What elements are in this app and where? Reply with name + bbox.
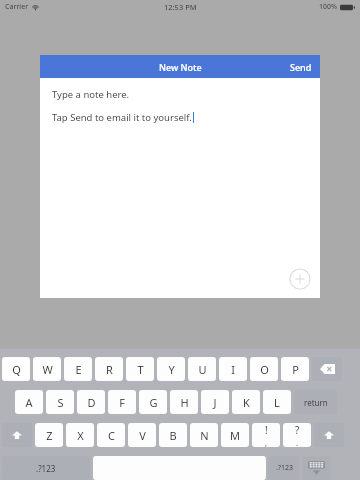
staticText: S — [57, 395, 64, 410]
staticText: J — [213, 395, 217, 410]
staticText: , — [265, 437, 268, 447]
staticText: . — [296, 437, 299, 447]
button[interactable]: Hide keyboard — [302, 456, 331, 480]
staticText: R — [106, 362, 113, 377]
button[interactable]: ? — [283, 423, 311, 447]
button[interactable]: Shift — [2, 423, 32, 447]
staticText: Y — [168, 362, 175, 377]
button[interactable]: M — [221, 423, 249, 447]
button[interactable]: K — [232, 390, 260, 414]
button[interactable]: J — [201, 390, 229, 414]
button[interactable]: T — [126, 357, 154, 381]
button[interactable]: S — [46, 390, 74, 414]
staticText: .?123 — [276, 463, 293, 473]
button[interactable]: Backspace — [312, 357, 342, 381]
staticText: M — [230, 428, 240, 443]
button[interactable]: Numbers — [269, 456, 299, 480]
button[interactable]: Add attachment — [289, 268, 311, 290]
button[interactable]: N — [190, 423, 218, 447]
staticText: N — [200, 428, 209, 443]
staticText: I — [231, 362, 235, 377]
staticText: A — [25, 395, 33, 410]
staticText: P — [292, 362, 299, 377]
staticText: Q — [12, 362, 21, 377]
staticText: U — [198, 362, 207, 377]
staticText: Send — [290, 61, 312, 73]
staticText: W — [42, 362, 53, 377]
staticText: O — [260, 362, 269, 377]
staticText: L — [274, 395, 280, 410]
staticText: K — [243, 395, 250, 410]
staticText: T — [137, 362, 144, 377]
button[interactable]: F — [108, 390, 136, 414]
staticText: Type a note here. — [52, 88, 130, 101]
staticText: E — [75, 362, 82, 377]
button[interactable]: G — [139, 390, 167, 414]
staticText: Tap Send to email it to yourself. — [52, 111, 192, 124]
button[interactable]: Send — [282, 57, 320, 77]
button[interactable]: C — [97, 423, 125, 447]
staticText: return — [304, 397, 328, 408]
button[interactable]: L — [263, 390, 291, 414]
button[interactable]: R — [95, 357, 123, 381]
staticText: C — [108, 428, 115, 443]
button[interactable]: B — [159, 423, 187, 447]
button[interactable]: O — [250, 357, 278, 381]
button[interactable]: Y — [157, 357, 185, 381]
staticText: ! — [265, 423, 268, 437]
staticText: .?123 — [36, 463, 56, 474]
button[interactable]: P — [281, 357, 309, 381]
staticText: 12:53 PM — [164, 2, 197, 12]
button[interactable]: D — [77, 390, 105, 414]
button[interactable]: E — [64, 357, 92, 381]
staticText: B — [169, 428, 177, 443]
staticText: 100% — [319, 2, 337, 12]
button[interactable]: Numbers — [2, 456, 90, 480]
button[interactable]: V — [128, 423, 156, 447]
button[interactable]: A — [15, 390, 43, 414]
button[interactable]: H — [170, 390, 198, 414]
staticText: G — [149, 395, 158, 410]
button[interactable]: Q — [2, 357, 30, 381]
button[interactable]: W — [33, 357, 61, 381]
staticText: Carrier — [5, 2, 29, 12]
staticText: X — [77, 428, 84, 443]
staticText: D — [87, 395, 96, 410]
button[interactable]: Shift — [314, 423, 344, 447]
button[interactable]: U — [188, 357, 216, 381]
staticText: H — [180, 395, 189, 410]
staticText: F — [119, 395, 125, 410]
button[interactable]: Return — [294, 390, 337, 414]
button[interactable]: X — [66, 423, 94, 447]
staticText: ? — [295, 423, 300, 437]
staticText: New Note — [159, 61, 202, 73]
button[interactable]: ! — [252, 423, 280, 447]
staticText: V — [139, 428, 146, 443]
button[interactable]: I — [219, 357, 247, 381]
button[interactable]: Z — [35, 423, 63, 447]
staticText: Z — [46, 428, 53, 443]
